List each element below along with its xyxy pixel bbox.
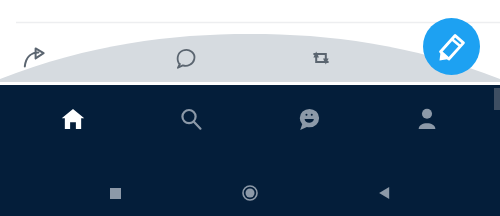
button[interactable]: Compose	[423, 18, 480, 75]
button[interactable]: Share	[12, 36, 56, 80]
button[interactable]: Profile	[382, 89, 472, 149]
button[interactable]: Home	[28, 89, 118, 149]
button[interactable]: Home	[230, 173, 270, 213]
button[interactable]: Recents	[95, 173, 135, 213]
button[interactable]: Search	[146, 89, 236, 149]
button[interactable]: Messages	[264, 89, 354, 149]
button[interactable]: Reply	[163, 36, 207, 80]
button[interactable]: Back	[365, 173, 405, 213]
button[interactable]: Retweet	[299, 36, 343, 80]
